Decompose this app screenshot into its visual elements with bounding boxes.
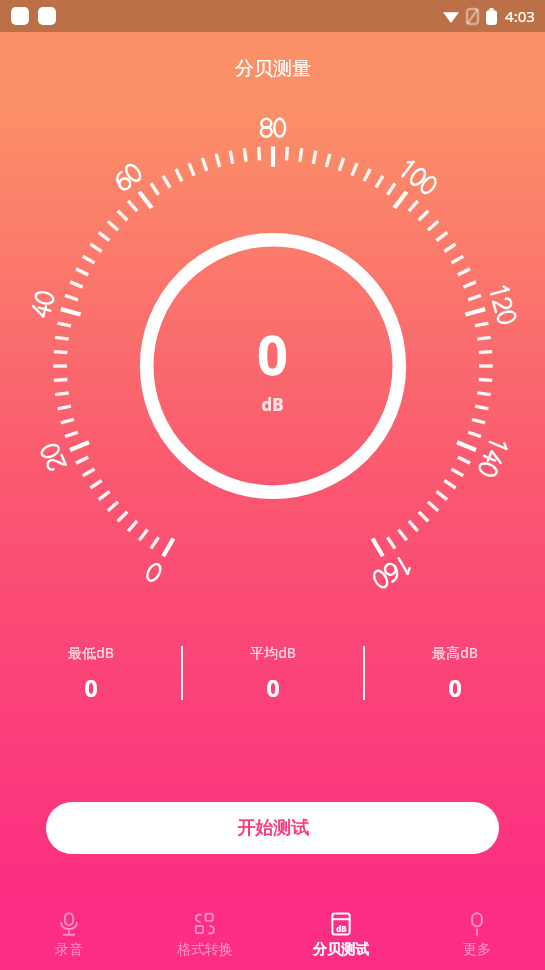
staticText: 0: [448, 672, 462, 703]
staticText: 更多: [463, 941, 491, 959]
button[interactable]: 格式转换: [137, 900, 273, 970]
staticText: 分贝测量: [235, 57, 311, 81]
button[interactable]: 开始测试: [46, 802, 499, 854]
other: 录音: [57, 912, 81, 936]
staticText: 开始测试: [237, 817, 309, 840]
staticText: 分贝测试: [313, 941, 369, 959]
staticText: 格式转换: [177, 941, 233, 959]
staticText: 0: [257, 317, 288, 391]
staticText: 0: [84, 672, 98, 703]
staticText: 平均dB: [250, 643, 296, 662]
staticText: 最高dB: [432, 643, 478, 662]
staticText: 4:03: [505, 6, 535, 26]
staticText: dB: [336, 923, 347, 934]
other: 分贝测试: [329, 912, 353, 936]
button[interactable]: 最高dB: [365, 627, 545, 719]
staticText: 录音: [55, 941, 83, 959]
button[interactable]: 平均dB: [183, 627, 363, 719]
other: 格式转换: [193, 912, 217, 936]
other: 更多: [465, 912, 489, 936]
button[interactable]: 分贝测试: [273, 900, 409, 970]
button[interactable]: 最低dB: [0, 627, 181, 719]
staticText: 0: [266, 672, 280, 703]
button[interactable]: 更多: [409, 900, 545, 970]
button[interactable]: 录音: [0, 900, 137, 970]
staticText: 最低dB: [68, 643, 114, 662]
staticText: dB: [261, 393, 284, 416]
